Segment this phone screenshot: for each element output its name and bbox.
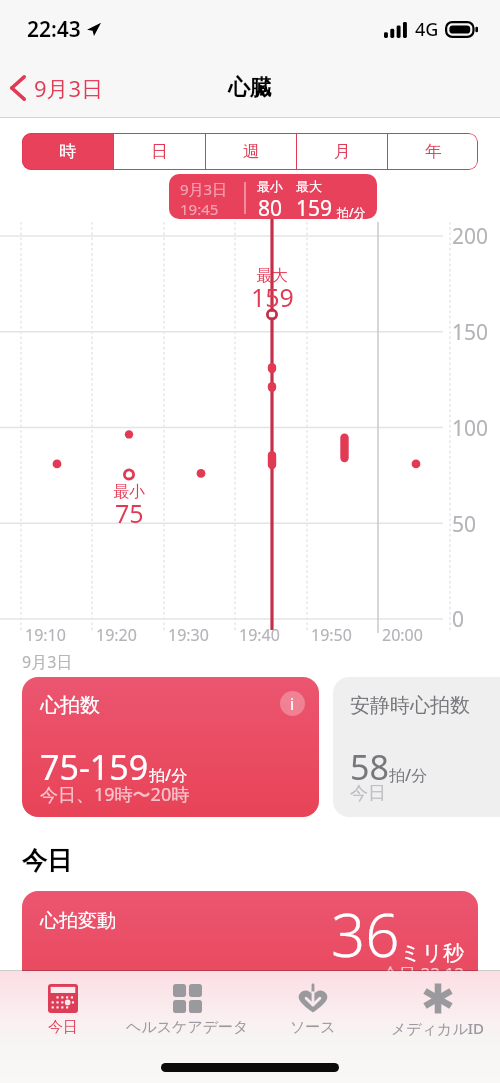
staticText: 22:43: [27, 15, 81, 44]
staticText: 19:30: [168, 624, 209, 646]
staticText: 19:20: [96, 624, 137, 646]
staticText: ヘルスケアデータ: [126, 1018, 249, 1037]
staticText: 19:50: [311, 624, 352, 646]
staticText: 安静時心拍数: [350, 693, 470, 718]
button[interactable]: メディカルID: [375, 983, 500, 1039]
staticText: 58: [350, 744, 389, 790]
staticText: 心拍変動: [40, 909, 116, 933]
staticText: 今日 22:12: [382, 962, 464, 985]
button[interactable]: 年: [388, 133, 478, 170]
staticText: ミリ秒: [400, 940, 464, 966]
staticText: 心臓: [228, 74, 272, 102]
button[interactable]: 週: [206, 133, 296, 170]
staticText: 50: [452, 510, 477, 539]
staticText: 最大: [256, 266, 288, 286]
staticText: 今日: [350, 782, 386, 805]
staticText: 36: [331, 893, 400, 975]
staticText: 0: [452, 605, 465, 634]
button[interactable]: 心拍数: [22, 677, 319, 817]
button[interactable]: 日: [114, 133, 205, 170]
staticText: 週: [243, 141, 260, 162]
button[interactable]: 心拍変動: [22, 891, 478, 1021]
staticText: 19:40: [239, 624, 280, 646]
staticText: 時: [59, 141, 76, 162]
staticText: 200: [452, 222, 489, 251]
other: メディカルID: [423, 984, 453, 1013]
staticText: 150: [452, 318, 489, 347]
staticText: 日: [151, 141, 168, 162]
staticText: 159: [251, 280, 294, 314]
other: 今日: [48, 984, 78, 1013]
staticText: 拍/分: [389, 764, 428, 786]
staticText: 20:00: [382, 624, 423, 646]
staticText: 75: [115, 496, 144, 530]
staticText: 拍/分: [337, 204, 366, 219]
staticText: 心拍数: [40, 693, 100, 718]
staticText: 100: [452, 414, 489, 443]
staticText: ソース: [290, 1018, 336, 1037]
button[interactable]: 安静時心拍数: [333, 677, 500, 817]
staticText: 最大: [296, 178, 322, 194]
button[interactable]: 時: [22, 133, 113, 170]
button[interactable]: 9月3日: [0, 66, 116, 110]
staticText: 19:10: [25, 624, 66, 646]
other: ヘルスケアデータ: [173, 984, 202, 1013]
staticText: 今日: [48, 1018, 78, 1037]
staticText: メディカルID: [391, 1018, 485, 1038]
staticText: 年: [425, 141, 442, 162]
staticText: 今日、19時〜20時: [40, 782, 190, 807]
staticText: 9月3日: [34, 73, 104, 103]
button[interactable]: 9月3日: [169, 174, 377, 219]
staticText: 80: [258, 194, 283, 219]
staticText: 159: [296, 194, 333, 219]
staticText: 75-159: [40, 744, 149, 790]
staticText: 最小: [113, 482, 145, 502]
staticText: 拍/分: [149, 764, 188, 786]
staticText: 今日: [22, 845, 72, 876]
staticText: 9月3日: [22, 651, 73, 673]
staticText: 9月3日: [180, 179, 228, 199]
button[interactable]: ソース: [250, 983, 375, 1038]
staticText: 月: [334, 141, 351, 162]
staticText: i: [290, 693, 295, 715]
staticText: 最小: [257, 178, 283, 194]
button[interactable]: 月: [297, 133, 387, 170]
button[interactable]: 情報: [280, 691, 305, 716]
button[interactable]: 今日: [0, 983, 125, 1038]
button[interactable]: ヘルスケアデータ: [125, 983, 250, 1038]
staticText: 19:45: [180, 199, 219, 219]
other: ソース: [298, 984, 328, 1013]
staticText: 4G: [415, 17, 439, 42]
